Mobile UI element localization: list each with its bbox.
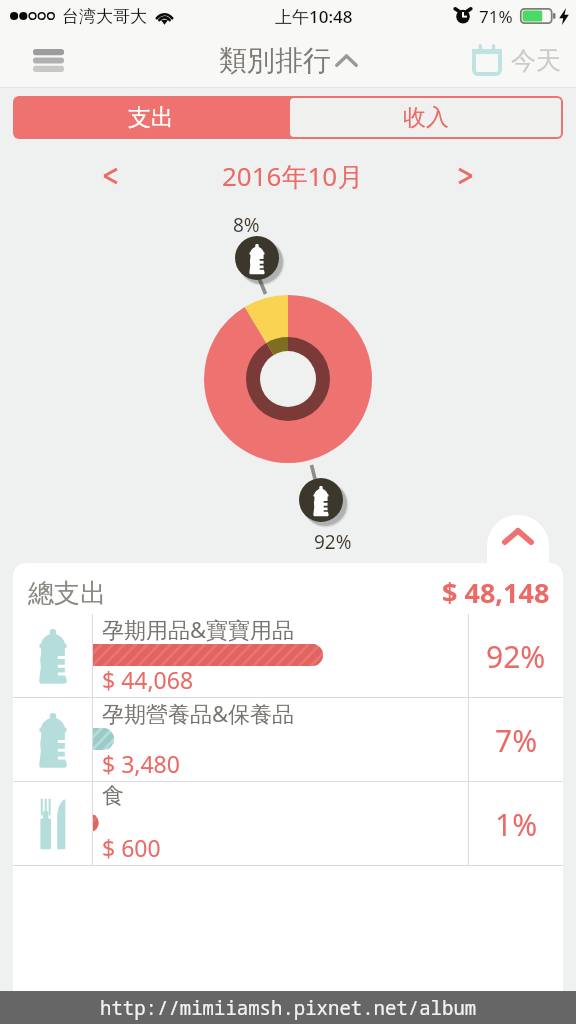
staticText: http://mimiiamsh.pixnet.net/album xyxy=(100,995,477,1021)
button[interactable]: Previous month xyxy=(80,154,140,198)
button[interactable]: Next month xyxy=(436,154,496,198)
staticText: 7% xyxy=(495,720,538,761)
staticText: 2016年10月 xyxy=(222,158,364,194)
button[interactable]: 2016年10月 xyxy=(173,154,413,198)
staticText: 上午10:48 xyxy=(275,5,353,28)
staticText: $ 48,148 xyxy=(442,574,550,611)
staticText: 總支出 xyxy=(28,577,106,610)
staticText: $ 44,068 xyxy=(102,664,194,695)
staticText: 孕期營養品&保養品 xyxy=(102,698,295,728)
staticText: 8% xyxy=(233,212,260,238)
button[interactable]: 孕期用品&寶寶用品 xyxy=(13,614,563,697)
staticText: 92% xyxy=(314,529,352,555)
button[interactable]: Collapse xyxy=(487,515,549,573)
staticText: 收入 xyxy=(403,103,449,132)
staticText: 食 xyxy=(102,782,124,810)
button[interactable]: 今天 xyxy=(464,38,576,82)
staticText: 類別排行 xyxy=(219,43,331,78)
staticText: 支出 xyxy=(128,103,174,132)
staticText: $ 3,480 xyxy=(102,748,180,779)
button[interactable]: Menu xyxy=(18,32,78,88)
button[interactable]: 支出 xyxy=(13,96,288,139)
staticText: 71% xyxy=(479,5,513,28)
staticText: 92% xyxy=(486,636,546,677)
staticText: 台湾大哥大 xyxy=(62,6,147,27)
button[interactable]: 類別排行 xyxy=(211,35,366,86)
button[interactable]: 收入 xyxy=(290,98,561,137)
staticText: 1% xyxy=(495,804,538,845)
button[interactable]: 孕期營養品&保養品 xyxy=(13,698,563,781)
staticText: $ 600 xyxy=(102,832,161,863)
button[interactable]: 食 xyxy=(13,782,563,865)
staticText: 今天 xyxy=(511,45,561,76)
staticText: 孕期用品&寶寶用品 xyxy=(102,614,295,644)
